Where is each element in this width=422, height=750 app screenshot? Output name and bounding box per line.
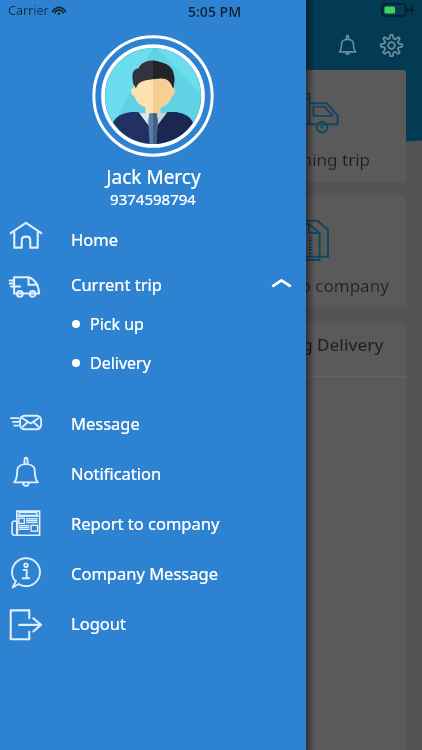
- staticText: Home: [71, 228, 118, 250]
- button[interactable]: Delivery: [0, 343, 306, 383]
- staticText: Report to company: [236, 274, 389, 297]
- button[interactable]: Ongoing Delivery: [219, 323, 406, 750]
- staticText: Pick up: [90, 313, 144, 335]
- staticText: Upcoming trip: [52, 148, 167, 171]
- staticText: Carrier: [8, 2, 49, 19]
- button[interactable]: Report to company: [16, 196, 203, 307]
- staticText: Notification: [71, 462, 162, 484]
- staticText: Jack Mercy: [106, 164, 201, 190]
- button[interactable]: Report to company: [0, 498, 306, 548]
- staticText: Current trip: [71, 273, 162, 295]
- button[interactable]: Notifications: [329, 27, 365, 63]
- button[interactable]: Notification: [0, 448, 306, 498]
- button[interactable]: Pick up: [0, 304, 306, 343]
- staticText: Report to company: [71, 512, 220, 534]
- staticText: Ongoing Delivery: [242, 333, 384, 356]
- staticText: 5:05 PM: [188, 2, 242, 18]
- button[interactable]: Ongoing Delivery: [16, 323, 203, 750]
- staticText: Message: [71, 412, 140, 434]
- staticText: Company Message: [71, 562, 218, 584]
- button[interactable]: Home: [0, 215, 306, 263]
- staticText: Ongoing Delivery: [39, 333, 181, 356]
- button[interactable]: Settings: [373, 27, 409, 63]
- button[interactable]: Current trip: [0, 263, 306, 304]
- button[interactable]: Logout: [0, 598, 306, 648]
- staticText: Delivery: [90, 352, 151, 374]
- button[interactable]: Report to company: [219, 196, 406, 307]
- staticText: Logout: [71, 612, 126, 634]
- staticText: Upcoming trip: [255, 148, 370, 171]
- button[interactable]: Message: [0, 398, 306, 448]
- button[interactable]: Upcoming trip: [219, 70, 406, 182]
- button[interactable]: Upcoming trip: [16, 70, 203, 182]
- staticText: Report to company: [33, 274, 186, 297]
- staticText: 9374598794: [110, 189, 196, 209]
- button[interactable]: Company Message: [0, 548, 306, 598]
